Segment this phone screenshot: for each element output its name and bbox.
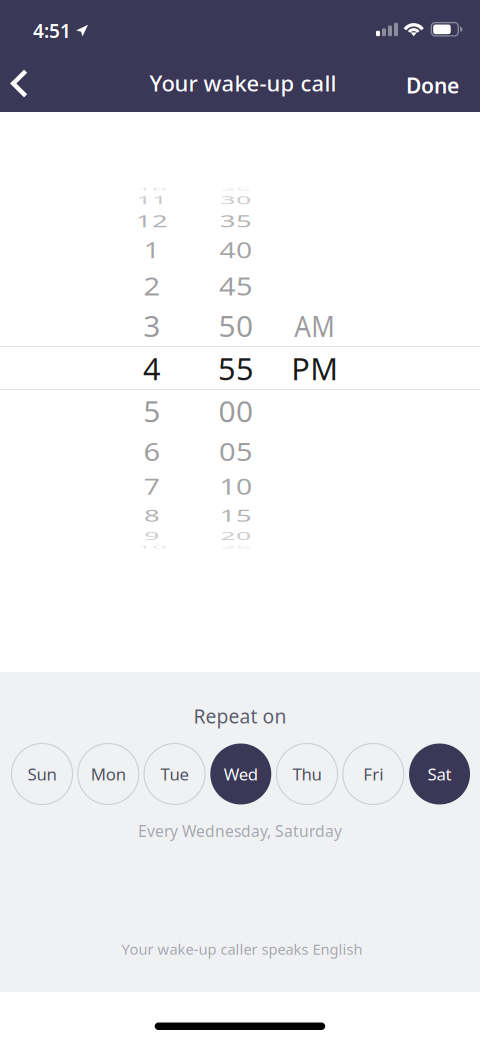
staticText: 3: [143, 305, 161, 347]
staticText: 55: [218, 347, 254, 389]
button[interactable]: Thu: [277, 743, 338, 804]
staticText: 9: [143, 515, 161, 557]
staticText: 2: [143, 265, 161, 306]
staticText: 15: [218, 495, 254, 536]
staticText: 7: [143, 466, 161, 507]
staticText: 10: [134, 526, 170, 568]
staticText: Tue: [161, 763, 189, 785]
staticText: Your wake-up caller speaks English: [121, 939, 362, 959]
staticText: Every Wednesday, Saturday: [138, 820, 342, 842]
button[interactable]: Done: [390, 54, 480, 112]
staticText: 25: [218, 168, 254, 210]
button[interactable]: Sat: [409, 743, 470, 804]
staticText: 40: [218, 229, 254, 271]
staticText: 25: [218, 526, 254, 568]
staticText: 30: [218, 180, 254, 221]
button[interactable]: Sun: [12, 743, 73, 804]
staticText: Repeat on: [193, 703, 286, 729]
staticText: Your wake-up call: [149, 68, 336, 98]
staticText: Thu: [293, 763, 322, 785]
button[interactable]: Mon: [78, 743, 139, 804]
staticText: 1: [143, 229, 161, 271]
staticText: 10: [218, 466, 254, 507]
button[interactable]: Back: [0, 54, 54, 112]
staticText: 35: [218, 200, 254, 242]
staticText: 10: [134, 168, 170, 210]
button[interactable]: Tue: [144, 743, 205, 804]
staticText: PM: [291, 347, 338, 389]
staticText: Wed: [224, 763, 258, 785]
button[interactable]: Fri: [343, 743, 404, 804]
staticText: 4:51: [33, 17, 71, 43]
staticText: 12: [134, 200, 170, 242]
staticText: 4: [143, 347, 161, 389]
staticText: Sat: [428, 763, 452, 785]
staticText: 00: [218, 390, 254, 432]
staticText: Done: [406, 71, 459, 100]
staticText: 20: [218, 515, 254, 557]
staticText: Mon: [91, 763, 126, 785]
staticText: 05: [218, 430, 254, 472]
staticText: 8: [143, 495, 161, 536]
staticText: Fri: [363, 763, 383, 785]
staticText: 50: [218, 305, 254, 347]
button[interactable]: Wed: [210, 743, 271, 804]
staticText: Sun: [28, 763, 57, 785]
staticText: AM: [291, 305, 339, 347]
staticText: 45: [218, 265, 254, 306]
staticText: 11: [134, 180, 170, 221]
staticText: 5: [143, 390, 161, 432]
staticText: 6: [143, 430, 161, 472]
